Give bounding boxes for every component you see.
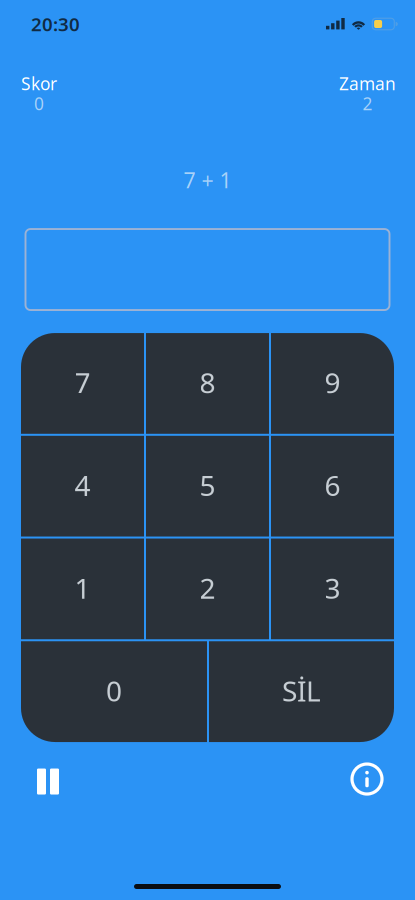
staticText: 2 xyxy=(199,569,215,606)
staticText: Skor xyxy=(21,72,57,95)
button[interactable]: 1 xyxy=(21,538,144,639)
button[interactable]: 9 xyxy=(271,333,394,434)
button[interactable]: 7 xyxy=(21,333,144,434)
staticText: 20:30 xyxy=(31,12,80,36)
button[interactable]: 2 xyxy=(146,538,269,639)
button[interactable]: 5 xyxy=(146,436,269,537)
staticText: 5 xyxy=(199,467,215,504)
button[interactable]: 0 xyxy=(21,641,207,742)
button[interactable]: Info xyxy=(345,757,389,801)
staticText: SİL xyxy=(282,672,321,709)
staticText: 6 xyxy=(324,467,340,504)
staticText: 2 xyxy=(362,92,372,115)
button[interactable]: 8 xyxy=(146,333,269,434)
button[interactable]: 3 xyxy=(271,538,394,639)
staticText: 0 xyxy=(34,92,44,115)
staticText: Zaman xyxy=(339,72,396,95)
staticText: 8 xyxy=(199,364,215,401)
button[interactable]: 4 xyxy=(21,436,144,537)
staticText: 7 + 1 xyxy=(183,166,231,194)
button[interactable]: SİL xyxy=(209,641,394,742)
button[interactable]: Pause xyxy=(26,757,70,801)
button[interactable]: Answer xyxy=(25,229,389,310)
staticText: 1 xyxy=(74,569,90,606)
staticText: 7 xyxy=(74,364,90,401)
button[interactable]: 6 xyxy=(271,436,394,537)
staticText: 4 xyxy=(74,467,90,504)
staticText: 9 xyxy=(324,364,340,401)
staticText: 0 xyxy=(106,672,122,709)
staticText: 3 xyxy=(324,569,340,606)
